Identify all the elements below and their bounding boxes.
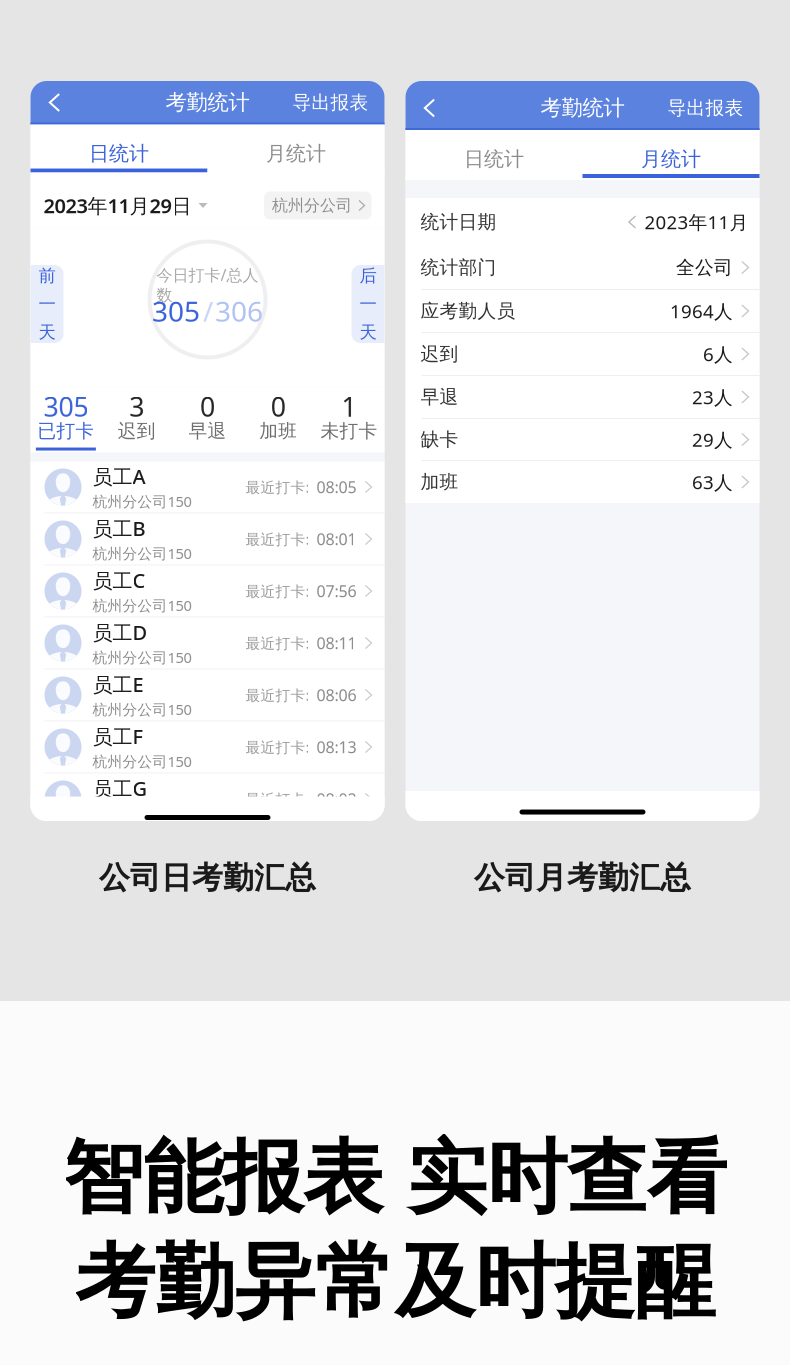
staticText: 6人 <box>703 342 733 366</box>
button[interactable]: 统计日期 <box>405 198 759 246</box>
staticText: 杭州分公司 <box>272 196 352 215</box>
staticText: 缺卡 <box>420 428 458 451</box>
staticText: 一 <box>38 293 55 315</box>
staticText: 07:56 <box>316 580 356 602</box>
button[interactable]: 1 <box>314 386 384 452</box>
staticText: 早退 <box>420 385 458 408</box>
button[interactable]: 员工A <box>30 461 384 513</box>
staticText: 月统计 <box>266 141 326 166</box>
button[interactable]: Back <box>30 79 74 125</box>
button[interactable]: 0 <box>172 386 243 452</box>
staticText: 今日打卡/总人数 <box>156 264 258 305</box>
button[interactable]: 早退 <box>405 376 759 419</box>
staticText: 员工G <box>92 775 147 802</box>
staticText: 杭州分公司150 <box>92 699 191 719</box>
staticText: 0 <box>271 389 286 424</box>
staticText: 公司日考勤汇总 <box>99 859 316 897</box>
button[interactable]: 月统计 <box>582 130 759 174</box>
button[interactable]: 员工E <box>30 669 384 721</box>
staticText: 0 <box>200 389 215 424</box>
staticText: 1 <box>342 389 357 424</box>
staticText: 导出报表 <box>292 91 368 114</box>
staticText: 员工A <box>92 463 145 490</box>
staticText: 08:05 <box>316 476 356 498</box>
staticText: 日统计 <box>464 147 524 171</box>
staticText: 2023年11月29日 <box>43 192 191 219</box>
staticText: 员工B <box>92 515 145 542</box>
button[interactable]: 305 <box>30 386 101 452</box>
staticText: 3 <box>129 389 144 424</box>
staticText: 08:11 <box>316 632 356 654</box>
staticText: 员工D <box>92 619 147 646</box>
staticText: 已打卡 <box>37 419 94 442</box>
staticText: 员工F <box>92 723 143 750</box>
staticText: 前 <box>38 265 55 286</box>
staticText: / <box>203 292 213 330</box>
staticText: 最近打卡: <box>245 581 309 601</box>
button[interactable]: 加班 <box>405 461 759 503</box>
staticText: 统计部门 <box>420 256 496 279</box>
button[interactable]: 员工F <box>30 721 384 773</box>
staticText: 08:06 <box>316 684 356 706</box>
staticText: 考勤统计 <box>540 95 624 121</box>
staticText: 2023年11月 <box>644 210 748 234</box>
button[interactable]: 3 <box>101 386 172 452</box>
button[interactable]: 日统计 <box>405 130 582 174</box>
staticText: 应考勤人员 <box>420 299 515 322</box>
staticText: 早退 <box>188 419 226 442</box>
staticText: 导出报表 <box>667 96 743 119</box>
staticText: 公司月考勤汇总 <box>474 859 691 897</box>
button[interactable]: 员工D <box>30 617 384 669</box>
staticText: 考勤统计 <box>165 89 249 116</box>
button[interactable]: 统计部门 <box>405 246 759 290</box>
button[interactable]: 前 <box>30 265 63 349</box>
staticText: 杭州分公司150 <box>92 595 191 615</box>
staticText: 306 <box>215 292 263 330</box>
staticText: 08:01 <box>316 528 356 550</box>
button[interactable]: 导出报表 <box>667 85 759 131</box>
staticText: 29人 <box>692 427 733 452</box>
button[interactable]: 日统计 <box>30 124 207 168</box>
staticText: 考勤异常及时提醒 <box>75 1233 715 1331</box>
staticText: 杭州分公司150 <box>92 803 191 823</box>
staticText: 08:02 <box>316 788 356 810</box>
button[interactable]: 后 <box>351 265 384 349</box>
button[interactable]: 缺卡 <box>405 419 759 461</box>
staticText: 最近打卡: <box>245 529 309 549</box>
staticText: 员工C <box>92 567 145 594</box>
staticText: 最近打卡: <box>245 685 309 705</box>
staticText: 63人 <box>692 470 733 494</box>
staticText: 天 <box>359 322 376 343</box>
button[interactable]: 员工B <box>30 513 384 565</box>
staticText: 未打卡 <box>321 419 378 442</box>
button[interactable]: 杭州分公司 <box>264 191 371 219</box>
button[interactable]: 月统计 <box>207 124 384 168</box>
staticText: 最近打卡: <box>245 789 309 809</box>
staticText: 智能报表 实时查看 <box>63 1129 727 1227</box>
staticText: 天 <box>38 322 55 343</box>
staticText: 全公司 <box>676 256 733 279</box>
staticText: 加班 <box>259 419 297 442</box>
button[interactable]: 迟到 <box>405 333 759 376</box>
staticText: 最近打卡: <box>245 477 309 497</box>
button[interactable]: 0 <box>243 386 314 452</box>
staticText: 迟到 <box>118 419 156 442</box>
staticText: 迟到 <box>420 342 458 365</box>
staticText: 加班 <box>420 470 458 493</box>
staticText: 杭州分公司150 <box>92 543 191 563</box>
staticText: 1964人 <box>670 299 733 323</box>
staticText: 员工E <box>92 671 143 698</box>
staticText: 08:13 <box>316 736 356 758</box>
staticText: 305 <box>152 292 200 330</box>
staticText: 杭州分公司150 <box>92 647 191 667</box>
button[interactable]: 导出报表 <box>292 79 384 125</box>
staticText: 一 <box>359 293 376 315</box>
button[interactable]: 应考勤人员 <box>405 290 759 333</box>
staticText: 杭州分公司150 <box>92 491 191 511</box>
button[interactable]: 员工G <box>30 773 384 825</box>
button[interactable]: 2023年11月29日 <box>43 192 207 219</box>
button[interactable]: 员工C <box>30 565 384 617</box>
button[interactable]: Back <box>405 85 449 131</box>
staticText: 后 <box>359 265 376 286</box>
staticText: 305 <box>43 389 88 424</box>
